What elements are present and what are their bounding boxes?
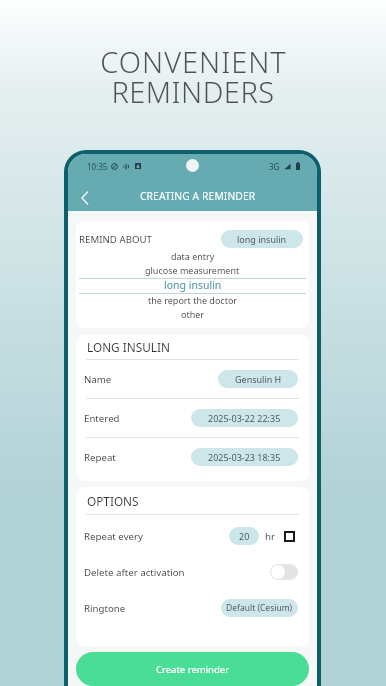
staticText: Create reminder	[156, 663, 230, 676]
staticText: 3G	[269, 161, 280, 172]
button[interactable]: long insulin	[76, 277, 309, 293]
staticText: Repeat every	[84, 530, 143, 543]
staticText: Repeat	[84, 451, 116, 464]
staticText: the report the doctor	[148, 294, 238, 306]
button[interactable]: other	[76, 307, 309, 321]
button[interactable]: Gensulin H	[218, 370, 298, 388]
button[interactable]: 20	[229, 527, 259, 545]
button[interactable]: the report the doctor	[76, 293, 309, 307]
staticText: Name	[84, 373, 112, 386]
staticText: hr	[265, 530, 275, 543]
button[interactable]: Delete after activation	[76, 554, 309, 590]
button[interactable]: Ringtone	[76, 590, 309, 626]
staticText: 10:35	[87, 161, 108, 172]
staticText: long insulin	[237, 233, 287, 245]
button[interactable]: long insulin	[221, 230, 303, 248]
staticText: Default (Cesium)	[226, 602, 293, 614]
staticText: CREATING A REMINDER	[140, 189, 256, 203]
staticText: 2025-03-23 18:35	[208, 451, 281, 463]
staticText: Ringtone	[84, 602, 126, 615]
button[interactable]: Repeat toggle	[284, 531, 295, 542]
button[interactable]: Delete after activation	[270, 564, 298, 580]
staticText: other	[181, 308, 205, 320]
button[interactable]: Create reminder	[76, 652, 309, 686]
staticText: long insulin	[164, 278, 222, 292]
button[interactable]: Repeat every	[76, 518, 309, 554]
button[interactable]: Name	[76, 360, 309, 398]
button[interactable]: glucose measurement	[76, 263, 309, 277]
staticText: glucose measurement	[145, 264, 240, 276]
staticText: Delete after activation	[84, 566, 185, 579]
button[interactable]: Entered	[76, 399, 309, 437]
staticText: Entered	[84, 412, 120, 425]
staticText: data entry	[171, 250, 215, 262]
staticText: CONVENIENT	[100, 42, 287, 81]
staticText: LONG INSULIN	[87, 339, 170, 355]
button[interactable]: data entry	[76, 249, 309, 263]
button[interactable]: Back	[72, 185, 98, 211]
staticText: REMIND ABOUT	[79, 233, 152, 246]
staticText: 2025-03-22 22:35	[208, 412, 281, 424]
staticText: REMINDERS	[111, 72, 275, 111]
staticText: 20	[239, 530, 250, 542]
button[interactable]: Default (Cesium)	[221, 599, 298, 617]
staticText: Gensulin H	[235, 373, 282, 385]
button[interactable]: 2025-03-23 18:35	[191, 448, 298, 466]
button[interactable]: 2025-03-22 22:35	[191, 409, 298, 427]
button[interactable]: Repeat	[76, 438, 309, 476]
staticText: OPTIONS	[87, 493, 139, 509]
